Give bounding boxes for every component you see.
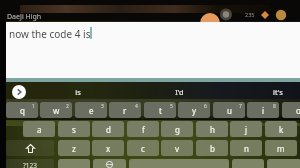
staticText: 6: [204, 103, 207, 110]
button[interactable]: More suggestions: [12, 85, 26, 99]
staticText: g: [175, 124, 180, 135]
staticText: o: [296, 105, 300, 116]
button[interactable]: [129, 159, 229, 168]
button[interactable]: t: [144, 102, 176, 118]
staticText: j: [245, 124, 248, 135]
staticText: 2: [66, 103, 69, 110]
button[interactable]: h: [196, 121, 228, 137]
button[interactable]: o: [282, 102, 300, 118]
staticText: i: [262, 105, 265, 116]
button[interactable]: m: [265, 140, 297, 156]
button[interactable]: ?123: [6, 159, 54, 168]
button[interactable]: z: [58, 140, 90, 156]
staticText: 5: [170, 103, 173, 110]
staticText: b: [210, 143, 215, 154]
staticText: n: [244, 143, 249, 154]
button[interactable]: x: [92, 140, 124, 156]
staticText: r: [123, 105, 127, 116]
button[interactable]: f: [127, 121, 159, 137]
button[interactable]: k: [265, 121, 297, 137]
staticText: v: [175, 143, 180, 154]
button[interactable]: is: [54, 84, 102, 100]
button[interactable]: d: [92, 121, 124, 137]
button[interactable]: it's: [254, 84, 300, 100]
button[interactable]: a: [23, 121, 55, 137]
button[interactable]: j: [230, 121, 262, 137]
staticText: 3: [101, 103, 104, 110]
staticText: q: [20, 105, 25, 116]
button[interactable]: Change language: [93, 159, 126, 168]
button[interactable]: y: [178, 102, 210, 118]
staticText: is: [75, 87, 81, 97]
staticText: DaeJi High: [7, 12, 42, 22]
button[interactable]: n: [230, 140, 262, 156]
staticText: 8: [273, 103, 276, 110]
staticText: ?123: [23, 161, 37, 168]
staticText: u: [227, 105, 232, 116]
staticText: 7: [239, 103, 242, 110]
button[interactable]: g: [161, 121, 193, 137]
button[interactable]: u: [213, 102, 245, 118]
staticText: now the code 4 is: [9, 27, 91, 41]
staticText: e: [89, 105, 94, 116]
staticText: t: [159, 105, 162, 116]
staticText: I'd: [175, 87, 184, 97]
staticText: w: [53, 105, 60, 116]
staticText: c: [141, 143, 145, 154]
staticText: y: [192, 105, 197, 116]
button[interactable]: now the code 4 is: [6, 22, 300, 82]
staticText: 235: [245, 11, 255, 18]
button[interactable]: i: [247, 102, 279, 118]
button[interactable]: s: [58, 121, 90, 137]
staticText: 4: [135, 103, 138, 110]
staticText: a: [37, 124, 42, 135]
button[interactable]: b: [196, 140, 228, 156]
button[interactable]: e: [75, 102, 107, 118]
staticText: d: [106, 124, 111, 135]
button[interactable]: [58, 159, 90, 168]
staticText: k: [279, 124, 284, 135]
button[interactable]: w: [40, 102, 72, 118]
staticText: s: [72, 124, 76, 135]
button[interactable]: r: [109, 102, 141, 118]
staticText: 1: [32, 103, 35, 110]
button[interactable]: [232, 159, 264, 168]
button[interactable]: v: [161, 140, 193, 156]
button[interactable]: Shift: [6, 140, 54, 156]
staticText: h: [210, 124, 215, 135]
staticText: z: [72, 143, 76, 154]
staticText: x: [106, 143, 111, 154]
button[interactable]: c: [127, 140, 159, 156]
staticText: f: [142, 124, 145, 135]
button[interactable]: q: [6, 102, 38, 118]
staticText: m: [277, 143, 285, 154]
button[interactable]: [267, 159, 300, 168]
button[interactable]: I'd: [155, 84, 203, 100]
staticText: it's: [273, 87, 283, 97]
